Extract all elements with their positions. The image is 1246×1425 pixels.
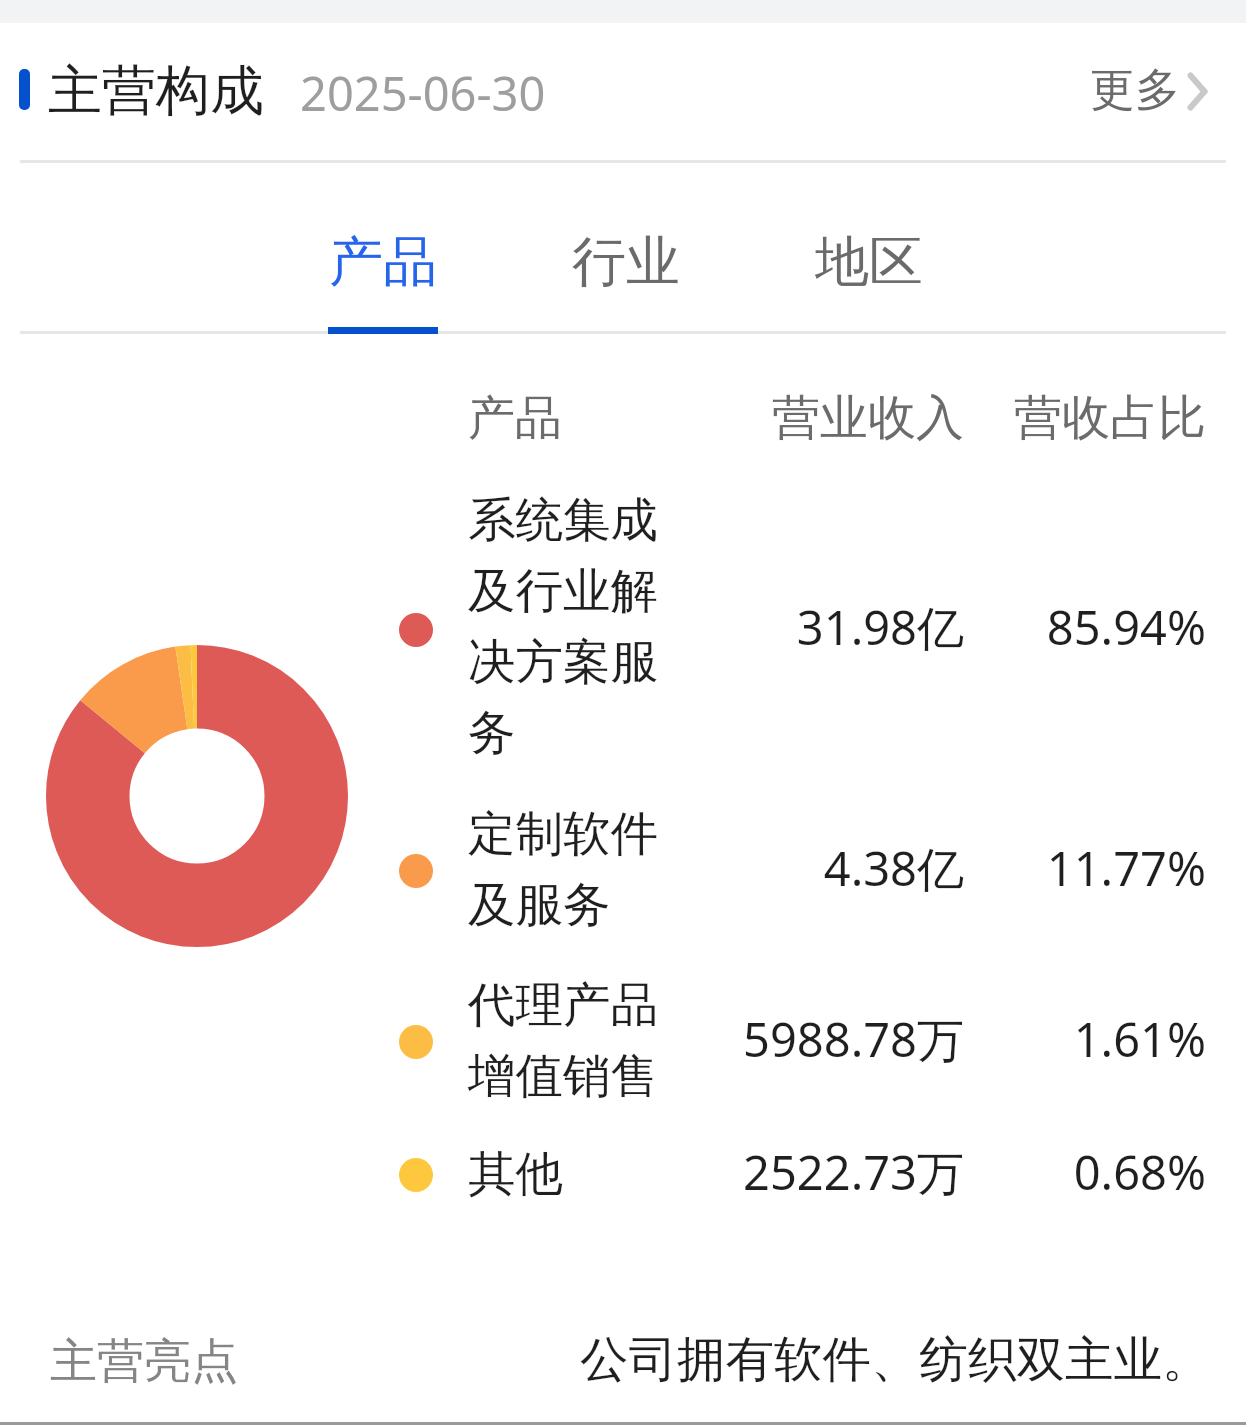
button[interactable]: 行业 [517,190,737,330]
staticText: 2025-06-30 [300,61,546,125]
staticText: 2522.73万 [664,1140,964,1204]
staticText: 更多 [1090,62,1180,119]
staticText: 系统集成及行业解决方案服务 [468,490,668,763]
button[interactable]: 地区 [760,190,980,330]
staticText: 0.68% [956,1140,1206,1204]
staticText: 定制软件及服务 [468,804,668,935]
other: 主营构成占比环形图 [46,645,348,947]
staticText: 营业收入 [664,388,964,448]
staticText: 主营亮点 [50,1332,238,1391]
staticText: 11.77% [956,836,1206,900]
button[interactable]: 代理产品增值销售 [0,959,1246,1125]
button[interactable]: 其他 [0,1113,1246,1237]
staticText: 代理产品增值销售 [468,975,668,1106]
staticText: 1.61% [956,1007,1206,1071]
staticText: 公司拥有软件、纺织双主业。 [580,1329,1211,1390]
staticText: 4.38亿 [664,836,964,900]
button[interactable]: 系统集成及行业解决方案服务 [0,474,1246,782]
button[interactable]: 主营亮点 [0,1300,1246,1418]
button[interactable]: 定制软件及服务 [0,788,1246,954]
staticText: 31.98亿 [664,595,964,659]
staticText: 产品 [329,228,437,296]
staticText: 主营构成 [48,57,264,125]
button[interactable]: 产品 [274,190,494,330]
staticText: 其他 [468,1144,563,1204]
button[interactable]: 更多 [1070,23,1226,160]
staticText: 85.94% [956,595,1206,659]
staticText: 地区 [815,228,923,296]
staticText: 行业 [572,228,680,296]
staticText: 营收占比 [956,388,1206,448]
staticText: 5988.78万 [664,1007,964,1071]
staticText: 产品 [468,389,562,448]
